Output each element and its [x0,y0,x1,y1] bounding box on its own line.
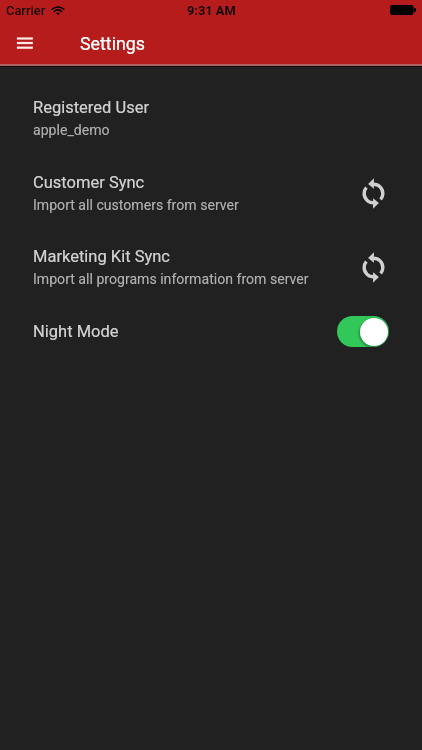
button[interactable]: Night Mode switch, on [337,316,389,347]
button[interactable]: Sync [357,251,389,283]
button[interactable]: Sync [357,177,389,209]
button[interactable]: Marketing Kit Sync [0,230,422,305]
staticText: Customer Sync [33,173,145,192]
staticText: Night Mode [33,322,119,341]
staticText: Import all programs information from ser… [33,271,309,288]
button[interactable]: Night Mode [0,305,422,380]
staticText: Marketing Kit Sync [33,247,171,266]
button[interactable]: Open navigation menu [2,22,46,64]
staticText: Carrier [6,3,46,18]
button[interactable]: Customer Sync [0,156,422,231]
button[interactable]: Registered User [0,81,422,156]
staticText: Settings [80,33,145,54]
staticText: 9:31 AM [187,3,236,18]
staticText: Import all customers from server [33,197,239,214]
staticText: Registered User [33,98,149,117]
staticText: apple_demo [33,122,110,139]
